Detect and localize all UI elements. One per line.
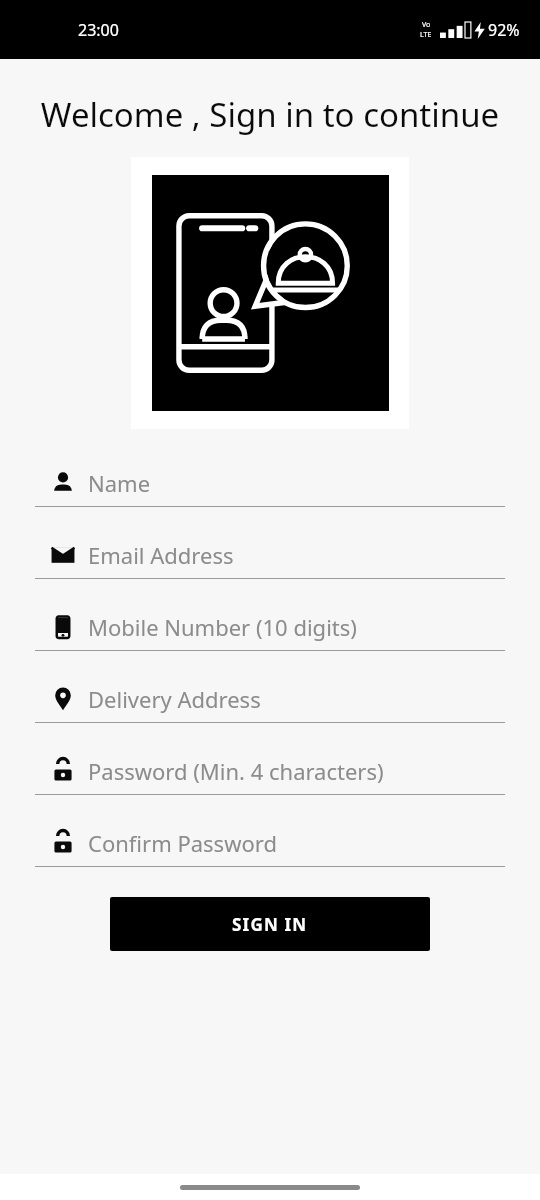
- button[interactable]: Confirm Password: [35, 820, 505, 867]
- button[interactable]: Password (Min. 4 characters): [35, 748, 505, 795]
- staticText: Mobile Number (10 digits): [88, 612, 357, 642]
- staticText: 23:00: [78, 19, 119, 41]
- staticText: LTE: [420, 30, 432, 40]
- button[interactable]: Delivery Address: [35, 676, 505, 723]
- staticText: Confirm Password: [88, 828, 277, 858]
- staticText: SIGN IN: [232, 913, 308, 936]
- staticText: Welcome , Sign in to continue: [0, 92, 540, 137]
- staticText: Password (Min. 4 characters): [88, 756, 384, 786]
- staticText: Vo: [422, 20, 431, 30]
- other: Home gesture bar: [180, 1185, 360, 1190]
- button[interactable]: SIGN IN: [110, 897, 430, 951]
- staticText: Name: [88, 468, 151, 498]
- staticText: Delivery Address: [88, 684, 261, 714]
- staticText: Email Address: [88, 540, 234, 570]
- button[interactable]: Email Address: [35, 532, 505, 579]
- button[interactable]: Name: [35, 460, 505, 507]
- staticText: 92%: [488, 19, 520, 41]
- button[interactable]: Mobile Number (10 digits): [35, 604, 505, 651]
